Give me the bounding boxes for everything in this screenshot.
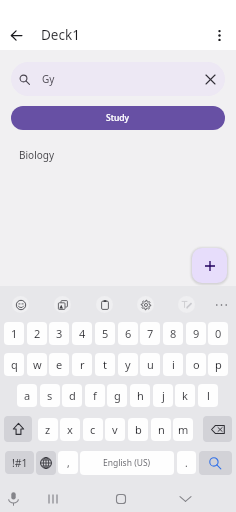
button[interactable]: r [72,353,92,376]
staticText: c [90,422,96,437]
staticText: g [114,388,121,403]
button[interactable]: b [128,418,148,441]
button[interactable]: q [4,353,24,376]
staticText: o [193,357,200,372]
staticText: 5 [102,326,109,341]
staticText: j [162,388,165,403]
staticText: d [69,388,76,403]
button[interactable]: p [208,353,228,376]
button[interactable]: Shift [4,416,32,442]
button[interactable]: h [130,384,150,407]
button[interactable]: v [105,418,125,441]
staticText: Deck1 [41,26,80,44]
staticText: v [112,422,118,437]
button[interactable]: c [83,418,103,441]
button[interactable]: Home [110,488,131,509]
button[interactable]: u [140,353,160,376]
button[interactable]: 7 [140,322,160,345]
staticText: English (US) [103,457,151,469]
button[interactable]: g [107,384,127,407]
staticText: 7 [147,326,154,341]
button[interactable]: k [175,384,195,407]
button[interactable]: More options [206,22,232,48]
staticText: n [158,422,165,437]
staticText: 3 [56,326,63,341]
button[interactable]: m [173,418,193,441]
button[interactable]: 5 [95,322,115,345]
button[interactable]: w [27,353,47,376]
button[interactable]: j [153,384,173,407]
button[interactable]: 6 [118,322,138,345]
staticText: b [135,422,142,437]
button[interactable]: , [58,451,78,474]
staticText: s [47,388,53,403]
button[interactable]: Clear search [197,66,223,92]
button[interactable]: Study [11,106,225,130]
button[interactable]: i [163,353,183,376]
staticText: . [185,456,188,470]
button[interactable]: Add card [192,248,227,283]
button[interactable]: y [118,353,138,376]
staticText: l [207,388,210,403]
button[interactable]: l [198,384,218,407]
button[interactable]: t [95,353,115,376]
button[interactable]: Gy [11,62,225,96]
staticText: h [137,388,144,403]
button[interactable]: d [62,384,82,407]
button[interactable]: Back [2,21,30,49]
staticText: 6 [125,326,132,341]
button[interactable]: 3 [49,322,69,345]
staticText: i [172,357,175,372]
staticText: f [93,388,97,403]
button[interactable]: Backspace [203,416,232,442]
button[interactable]: Change language [36,451,56,475]
staticText: r [80,357,85,372]
button[interactable]: Stickers [54,296,71,313]
staticText: 8 [170,326,177,341]
staticText: Biology [19,148,55,162]
button[interactable]: Recents [42,488,63,509]
button[interactable]: e [49,353,69,376]
button[interactable]: z [38,418,58,441]
button[interactable]: Settings [137,296,154,313]
staticText: q [11,357,18,372]
staticText: 1 [11,326,18,341]
button[interactable]: Search [199,451,232,475]
button[interactable]: 9 [186,322,206,345]
button[interactable]: 2 [27,322,47,345]
button[interactable]: 0 [208,322,228,345]
staticText: e [56,357,63,372]
staticText: 2 [34,326,41,341]
button[interactable]: Voice input [3,488,24,509]
button[interactable]: Handwriting [178,296,195,313]
button[interactable]: o [186,353,206,376]
button[interactable]: s [40,384,60,407]
staticText: t [103,357,107,372]
button[interactable]: f [85,384,105,407]
button[interactable]: n [151,418,171,441]
staticText: Gy [42,72,55,86]
button[interactable]: Emoji [12,296,29,313]
staticText: , [67,456,70,470]
button[interactable]: 1 [4,322,24,345]
staticText: 9 [193,326,200,341]
button[interactable]: x [60,418,80,441]
button[interactable]: More keyboard options [210,294,232,316]
staticText: m [178,422,189,437]
staticText: y [125,357,131,372]
staticText: x [67,422,73,437]
button[interactable]: . [177,451,196,474]
staticText: u [147,357,154,372]
staticText: w [33,357,42,372]
button[interactable]: a [17,384,37,407]
staticText: k [182,388,188,403]
staticText: p [215,357,222,372]
button[interactable]: 8 [163,322,183,345]
button[interactable]: Hide keyboard [175,488,196,509]
button[interactable]: !#1 [5,451,34,474]
staticText: !#1 [12,456,28,470]
staticText: a [24,388,31,403]
button[interactable]: Clipboard [96,296,113,313]
button[interactable]: 4 [72,322,92,345]
button[interactable]: English (US) [80,451,174,475]
